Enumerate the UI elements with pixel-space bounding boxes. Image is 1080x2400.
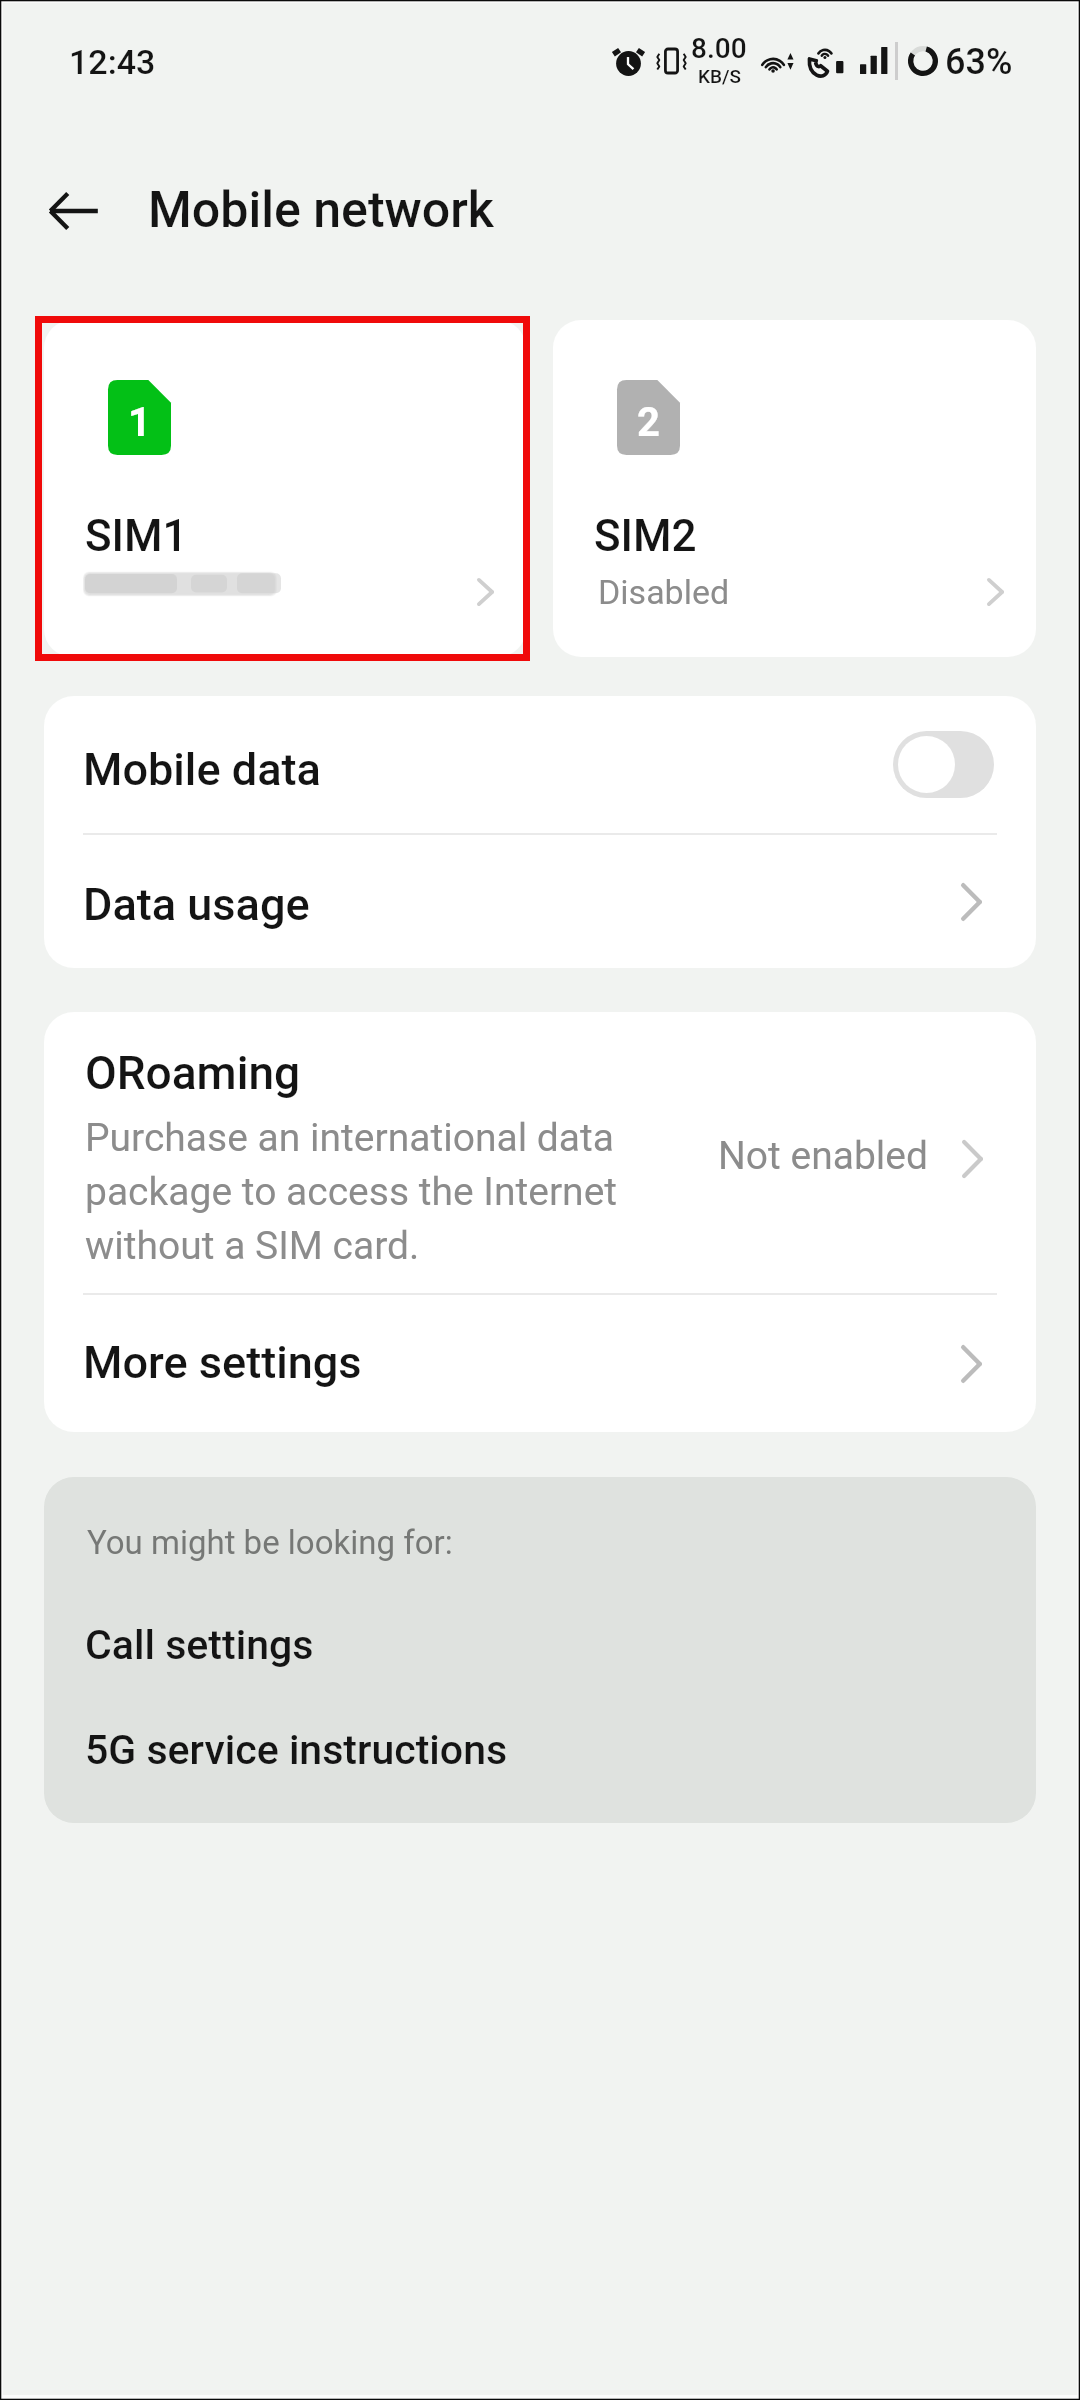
staticText: More settings — [83, 1336, 362, 1389]
button[interactable]: More settings — [44, 1295, 1036, 1432]
staticText: 2 — [637, 399, 660, 446]
staticText: 63% — [945, 41, 1013, 83]
button[interactable]: Back — [29, 166, 119, 256]
staticText: 8.00 — [691, 32, 747, 65]
staticText: Not enabled — [718, 1133, 928, 1179]
staticText: SIM1 — [85, 510, 188, 562]
staticText: KB/S — [698, 65, 741, 87]
staticText: 1 — [128, 399, 151, 446]
button[interactable]: Data usage — [44, 835, 1036, 968]
button[interactable]: Mobile data toggle — [893, 731, 994, 798]
button[interactable]: Mobile data — [44, 696, 1036, 833]
staticText: Data usage — [83, 878, 310, 931]
staticText: ORoaming — [85, 1046, 301, 1100]
button[interactable]: 5G service instructions — [85, 1726, 508, 1774]
staticText: 12:43 — [69, 42, 156, 82]
staticText: Mobile network — [148, 181, 494, 240]
staticText: You might be looking for: — [87, 1523, 453, 1562]
staticText: Mobile data — [83, 743, 321, 796]
staticText: SIM2 — [594, 510, 697, 562]
button[interactable]: 2 — [553, 320, 1036, 657]
button[interactable]: 1 — [44, 320, 526, 657]
button[interactable]: Call settings — [85, 1621, 314, 1669]
staticText: Purchase an international data package t… — [85, 1115, 618, 1268]
staticText: Disabled — [598, 572, 730, 612]
